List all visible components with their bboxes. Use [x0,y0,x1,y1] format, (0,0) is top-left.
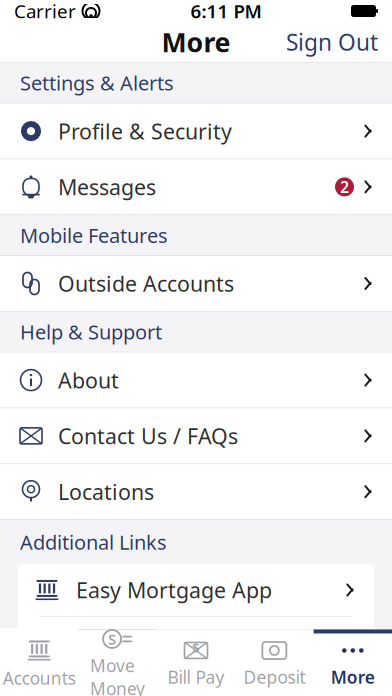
button[interactable]: More [314,630,392,696]
staticText: Deposit [243,665,305,688]
staticText: Accounts [3,666,76,689]
button[interactable]: Deposit [235,630,314,696]
staticText: Carrier [14,0,76,23]
staticText: Messages [58,173,156,201]
staticText: Contact Us / FAQs [58,422,238,450]
button[interactable]: Easy Mortgage App [18,564,374,617]
button[interactable]: About [0,353,392,408]
staticText: $ [192,639,200,656]
button[interactable]: Sign Out [272,19,392,65]
staticText: Mobile Features [20,222,168,248]
staticText: More [331,665,375,688]
staticText: Move Money [90,654,145,696]
staticText: Locations [58,477,154,506]
staticText: 6:11 PM [190,0,261,23]
button[interactable]: Home Equity [18,617,374,669]
staticText: Settings & Alerts [20,69,174,96]
staticText: Outside Accounts [58,269,234,298]
staticText: 2 [340,176,349,197]
staticText: About [58,366,119,394]
staticText: More [161,24,230,60]
staticText: Additional Links [20,529,167,555]
button[interactable]: Profile & Security [0,104,392,159]
button[interactable]: S [78,630,157,696]
staticText: Home Equity [76,629,206,657]
button[interactable]: Contact Us / FAQs [0,408,392,464]
button[interactable]: $ [157,630,235,696]
button[interactable]: Messages [0,159,392,215]
staticText: Easy Mortgage App [76,576,272,604]
staticText: Bill Pay [167,665,224,688]
staticText: S [108,629,116,649]
button[interactable]: Accounts [0,630,78,696]
staticText: Profile & Security [58,117,232,145]
button[interactable]: Outside Accounts [0,256,392,312]
button[interactable]: Locations [0,464,392,520]
staticText: Help & Support [20,318,162,345]
staticText: Sign Out [286,27,378,57]
